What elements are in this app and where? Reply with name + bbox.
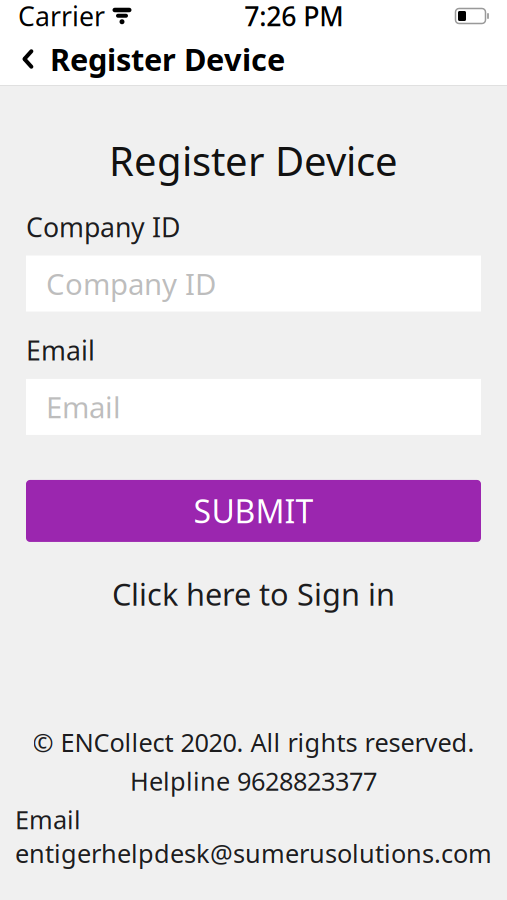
staticText: Email entigerhelpdesk@sumerusolutions.co… — [15, 803, 492, 870]
staticText: Email — [26, 332, 95, 368]
staticText: © ENCollect 2020. All rights reserved. — [32, 725, 474, 759]
button[interactable]: Click here to Sign in — [26, 574, 481, 614]
staticText: Email — [46, 387, 121, 426]
staticText: Carrier — [18, 0, 105, 34]
button[interactable]: SUBMIT — [26, 480, 481, 542]
staticText: Register Device — [109, 134, 398, 187]
staticText: Company ID — [26, 209, 180, 244]
staticText: Company ID — [46, 264, 216, 303]
staticText: SUBMIT — [193, 490, 313, 532]
staticText: Register Device — [50, 39, 285, 79]
staticText: 7:26 PM — [244, 0, 343, 34]
staticText: Helpline 9628823377 — [130, 764, 377, 798]
button[interactable]: Back — [0, 32, 295, 86]
staticText: Click here to Sign in — [112, 574, 395, 614]
